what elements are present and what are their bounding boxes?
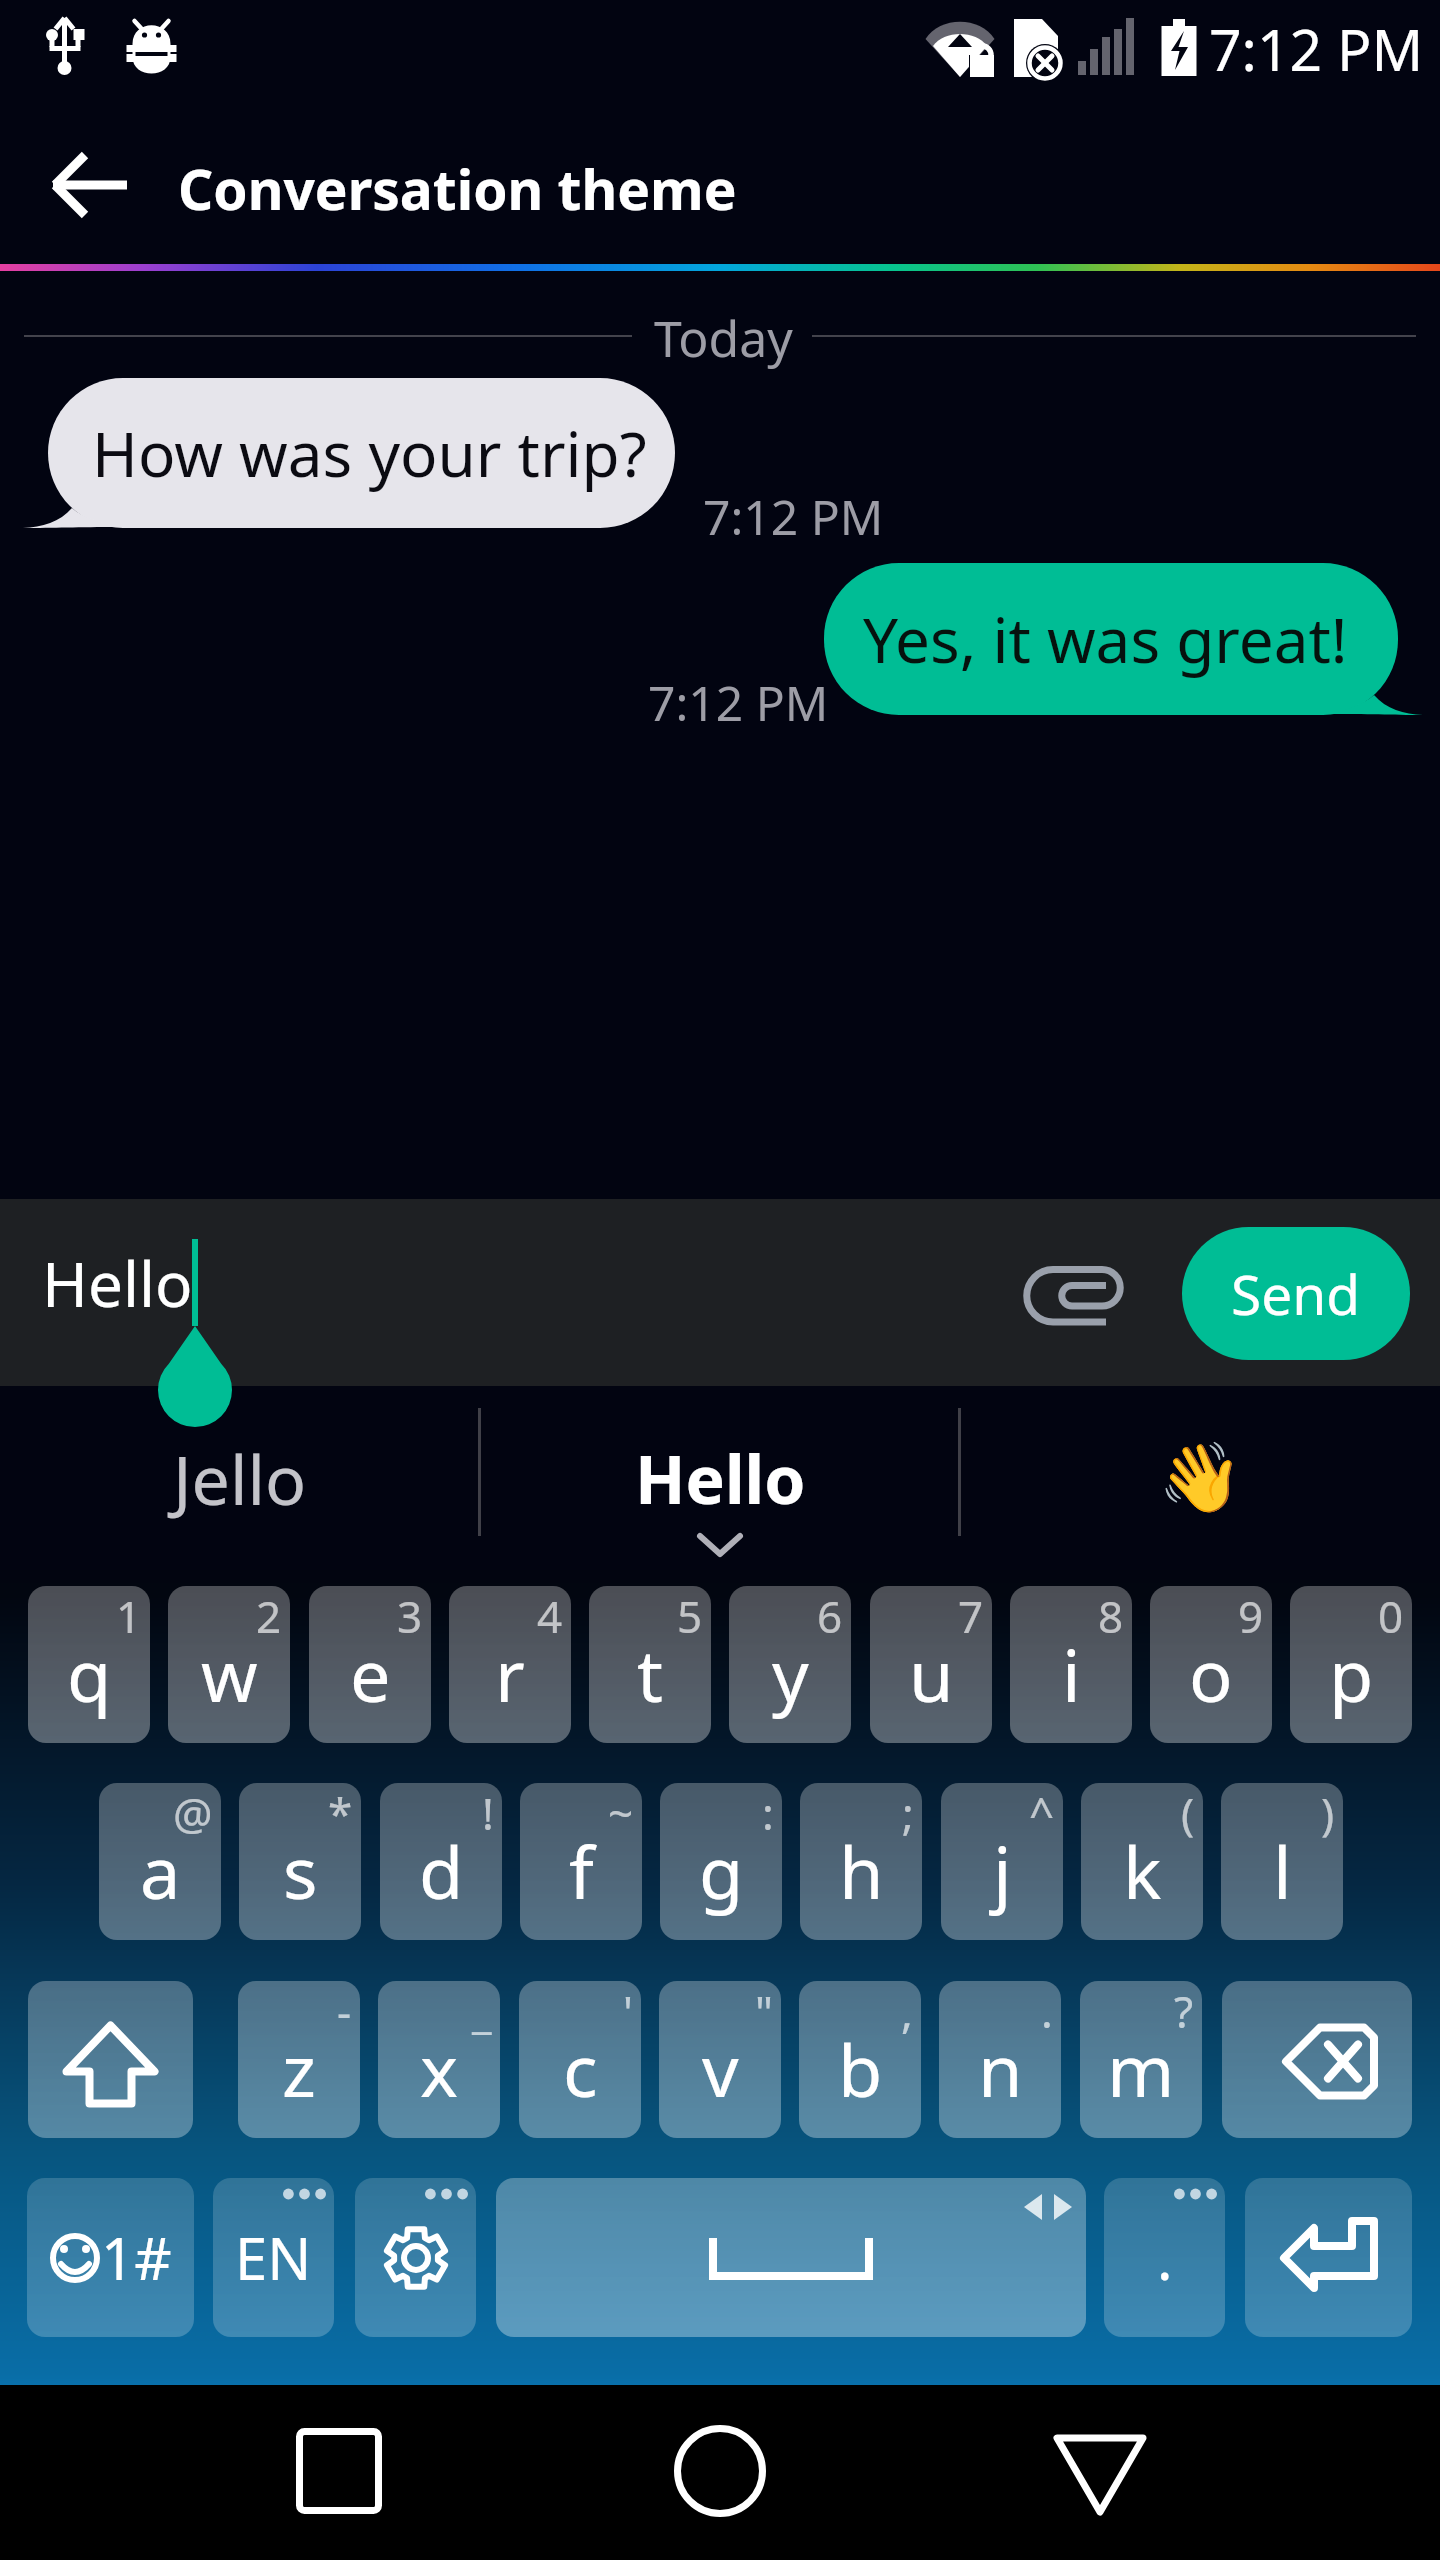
- staticText: b: [838, 2020, 883, 2118]
- button[interactable]: 8: [1010, 1586, 1132, 1743]
- button[interactable]: ?: [1080, 1981, 1202, 2138]
- button[interactable]: Attach file: [1006, 1243, 1149, 1343]
- staticText: z: [282, 2020, 316, 2118]
- button[interactable]: Home: [650, 2401, 790, 2541]
- button[interactable]: ,: [799, 1981, 921, 2138]
- button[interactable]: _: [378, 1981, 500, 2138]
- staticText: c: [563, 2020, 598, 2118]
- staticText: g: [699, 1822, 744, 1920]
- button[interactable]: 6: [729, 1586, 851, 1743]
- staticText: v: [702, 2020, 739, 2118]
- button[interactable]: Recents: [269, 2401, 409, 2541]
- staticText: d: [419, 1822, 464, 1920]
- staticText: Hello: [42, 1241, 193, 1325]
- staticText: 4: [537, 1586, 563, 1646]
- staticText: o: [1189, 1625, 1233, 1723]
- staticText: How was your trip?: [92, 411, 647, 495]
- button[interactable]: .: [1104, 2178, 1225, 2337]
- staticText: 8: [1098, 1586, 1124, 1646]
- button[interactable]: Keyboard settings: [355, 2178, 476, 2337]
- staticText: j: [993, 1822, 1012, 1920]
- button[interactable]: ": [659, 1981, 781, 2138]
- staticText: s: [283, 1822, 318, 1920]
- staticText: 6: [817, 1586, 843, 1646]
- staticText: -: [337, 1981, 352, 2041]
- staticText: r: [495, 1625, 525, 1723]
- button[interactable]: 2: [168, 1586, 290, 1743]
- button[interactable]: 1#: [27, 2178, 194, 2337]
- button[interactable]: !: [380, 1783, 502, 1940]
- button[interactable]: ': [519, 1981, 641, 2138]
- button[interactable]: -: [238, 1981, 360, 2138]
- button[interactable]: 4: [449, 1586, 571, 1743]
- button[interactable]: Enter: [1245, 2178, 1412, 2337]
- button[interactable]: ^: [941, 1783, 1063, 1940]
- staticText: a: [140, 1822, 181, 1920]
- staticText: Conversation theme: [178, 151, 737, 226]
- staticText: t: [637, 1625, 663, 1723]
- staticText: x: [420, 2020, 459, 2118]
- staticText: ^: [1029, 1783, 1055, 1843]
- button[interactable]: 7: [870, 1586, 992, 1743]
- staticText: i: [1062, 1625, 1081, 1723]
- staticText: ~: [608, 1783, 634, 1843]
- staticText: Today: [654, 304, 793, 372]
- button[interactable]: Back: [24, 120, 154, 250]
- staticText: ): [1321, 1783, 1335, 1843]
- staticText: e: [350, 1625, 391, 1723]
- staticText: 1: [116, 1586, 142, 1646]
- staticText: Jello: [173, 1432, 307, 1525]
- staticText: 7:12 PM: [648, 670, 829, 735]
- staticText: Send: [1231, 1256, 1361, 1331]
- staticText: @: [173, 1783, 213, 1843]
- button[interactable]: Send: [1182, 1227, 1410, 1360]
- button[interactable]: 9: [1150, 1586, 1272, 1743]
- button[interactable]: Jello: [0, 1386, 480, 1570]
- staticText: 0: [1378, 1586, 1404, 1646]
- staticText: y: [772, 1625, 809, 1723]
- staticText: h: [839, 1822, 884, 1920]
- button[interactable]: Backspace: [1222, 1981, 1412, 2138]
- staticText: 7:12 PM: [703, 484, 884, 549]
- button[interactable]: Hello: [480, 1386, 960, 1570]
- button[interactable]: ;: [800, 1783, 922, 1940]
- staticText: 7: [958, 1586, 984, 1646]
- staticText: Yes, it was great!: [863, 597, 1348, 681]
- staticText: EN: [235, 2218, 312, 2297]
- button[interactable]: :: [660, 1783, 782, 1940]
- button[interactable]: Space: [496, 2178, 1086, 2337]
- button[interactable]: .: [939, 1981, 1061, 2138]
- staticText: 3: [397, 1586, 423, 1646]
- staticText: (: [1181, 1783, 1195, 1843]
- staticText: 👋: [1158, 1438, 1243, 1518]
- button[interactable]: 1: [28, 1586, 150, 1743]
- staticText: k: [1123, 1822, 1162, 1920]
- button[interactable]: ): [1221, 1783, 1343, 1940]
- staticText: .: [1041, 1981, 1053, 2041]
- button[interactable]: 0: [1290, 1586, 1412, 1743]
- staticText: w: [201, 1625, 258, 1723]
- button[interactable]: Shift: [28, 1981, 193, 2138]
- staticText: ': [623, 1981, 633, 2041]
- staticText: 5: [677, 1586, 703, 1646]
- button[interactable]: 3: [309, 1586, 431, 1743]
- button[interactable]: 5: [589, 1586, 711, 1743]
- staticText: !: [482, 1783, 494, 1843]
- staticText: ,: [901, 1981, 913, 2041]
- button[interactable]: @: [99, 1783, 221, 1940]
- staticText: _: [472, 1981, 492, 2041]
- staticText: p: [1329, 1625, 1374, 1723]
- button[interactable]: 👋: [960, 1386, 1440, 1570]
- staticText: n: [978, 2020, 1023, 2118]
- staticText: ;: [902, 1783, 914, 1843]
- button[interactable]: *: [239, 1783, 361, 1940]
- staticText: 7:12 PM: [1209, 10, 1424, 88]
- button[interactable]: Back: [1030, 2405, 1170, 2545]
- button[interactable]: ~: [520, 1783, 642, 1940]
- staticText: Hello: [635, 1433, 806, 1523]
- button[interactable]: (: [1081, 1783, 1203, 1940]
- button[interactable]: EN: [213, 2178, 334, 2337]
- staticText: f: [569, 1822, 594, 1920]
- staticText: m: [1107, 2020, 1175, 2118]
- staticText: ": [755, 1981, 773, 2041]
